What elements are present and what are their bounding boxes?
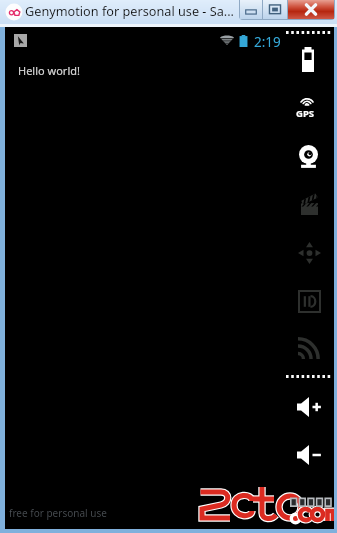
button[interactable]: Minimize [240,0,262,19]
button[interactable]: Battery [291,42,325,76]
staticText: GPS [296,107,315,120]
button[interactable]: Network [291,331,325,365]
button[interactable]: Restore [263,0,287,19]
button[interactable]: GPS [290,85,324,119]
staticText: Genymotion for personal use - Sa... [25,2,235,19]
staticText: free for personal use [9,506,107,520]
staticText: Hello world! [18,63,80,78]
button[interactable]: Volume up [292,390,326,424]
staticText: 2:19 [254,33,281,51]
button[interactable]: Camera [291,139,325,173]
button[interactable]: Identifiers [292,284,326,318]
button[interactable]: Record screen [292,187,326,221]
button[interactable]: Rotate [292,236,326,270]
button[interactable]: Close [288,0,334,19]
button[interactable]: Volume down [292,438,326,472]
